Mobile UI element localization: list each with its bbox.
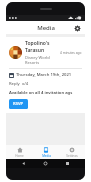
button[interactable]: Topolino's Tarasun [6,37,85,113]
button[interactable]: Settings [59,145,85,159]
button[interactable]: Media [33,145,59,159]
button[interactable]: Settings [72,23,82,33]
staticText: Topolino's Tarasun [25,40,60,54]
staticText: 4 minutes ago [60,51,82,55]
button[interactable]: Recent apps [63,159,72,168]
button[interactable]: RSVP [9,99,28,109]
staticText: Home [15,154,24,157]
staticText: Thursday, March 19th, 2021 [16,72,72,78]
button[interactable]: Home [6,145,33,159]
staticText: RSVP [13,101,24,107]
staticText: Available on all 4 invitation ags [9,90,73,96]
staticText: Media [37,24,55,32]
staticText: Media [42,154,51,157]
staticText: Settings [66,154,78,157]
staticText: Reply x/4 [9,81,29,87]
button[interactable]: Home [41,159,50,168]
button[interactable]: Back [19,159,28,168]
staticText: Disney World Resorts [25,55,60,65]
